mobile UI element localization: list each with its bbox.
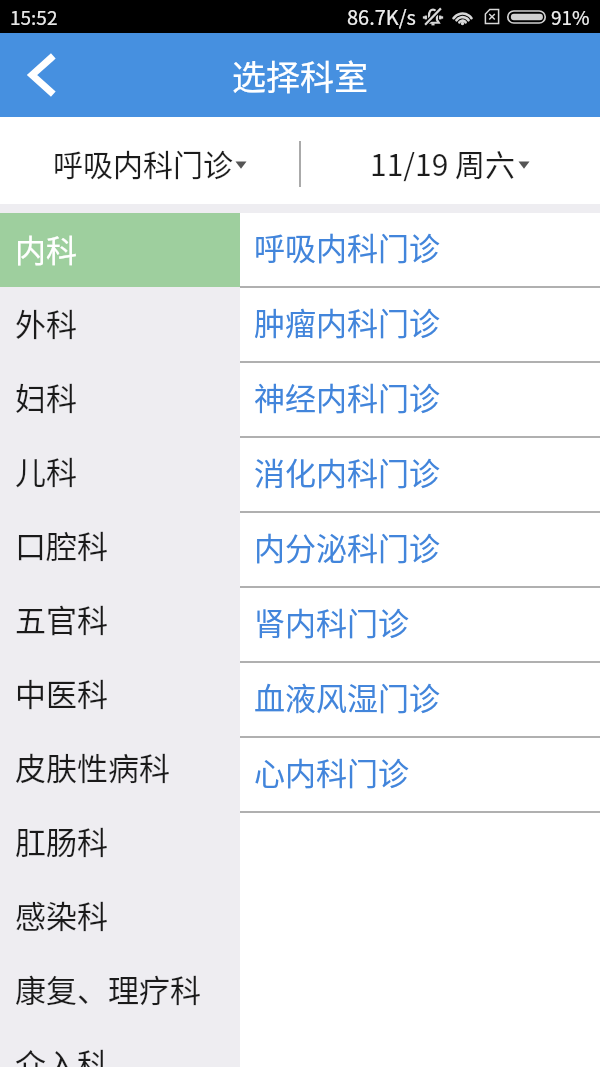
button[interactable]: 呼吸内科门诊 xyxy=(0,120,300,204)
button[interactable]: 肾内科门诊 xyxy=(240,588,600,663)
staticText: 妇科 xyxy=(15,374,77,419)
staticText: 11/19 周六 xyxy=(370,141,516,184)
button[interactable]: 五官科 xyxy=(0,583,240,657)
button[interactable]: 内分泌科门诊 xyxy=(240,513,600,588)
button[interactable]: 外科 xyxy=(0,287,240,361)
button[interactable]: 11/19 周六 xyxy=(300,120,600,204)
staticText: 介入科 xyxy=(15,1040,108,1067)
staticText: 中医科 xyxy=(15,670,108,715)
button[interactable]: 血液风湿门诊 xyxy=(240,663,600,738)
staticText: 皮肤性病科 xyxy=(15,744,170,789)
staticText: 消化内科门诊 xyxy=(254,449,440,494)
staticText: 外科 xyxy=(15,300,77,345)
staticText: 五官科 xyxy=(15,596,108,641)
button[interactable]: 中医科 xyxy=(0,657,240,731)
button[interactable]: 内科 xyxy=(0,213,240,287)
staticText: 内科 xyxy=(15,226,77,271)
button[interactable]: 呼吸内科门诊 xyxy=(240,213,600,288)
button[interactable]: 心内科门诊 xyxy=(240,738,600,813)
button[interactable]: 消化内科门诊 xyxy=(240,438,600,513)
staticText: 神经内科门诊 xyxy=(254,374,440,419)
button[interactable]: 皮肤性病科 xyxy=(0,731,240,805)
staticText: 选择科室 xyxy=(232,51,368,100)
button[interactable]: 肛肠科 xyxy=(0,805,240,879)
button[interactable]: 介入科 xyxy=(0,1027,240,1067)
button[interactable]: 妇科 xyxy=(0,361,240,435)
button[interactable]: 肿瘤内科门诊 xyxy=(240,288,600,363)
button[interactable]: Back xyxy=(0,33,83,117)
staticText: 15:52 xyxy=(10,3,58,31)
staticText: 康复、理疗科 xyxy=(15,966,201,1011)
staticText: 心内科门诊 xyxy=(254,749,409,794)
staticText: 肿瘤内科门诊 xyxy=(254,299,440,344)
staticText: 呼吸内科门诊 xyxy=(254,224,440,269)
staticText: 口腔科 xyxy=(15,522,108,567)
staticText: 感染科 xyxy=(15,892,108,937)
staticText: 肛肠科 xyxy=(15,818,108,863)
button[interactable]: 神经内科门诊 xyxy=(240,363,600,438)
staticText: 91% xyxy=(551,3,590,31)
staticText: 内分泌科门诊 xyxy=(254,524,440,569)
staticText: 肾内科门诊 xyxy=(254,599,409,644)
button[interactable]: 儿科 xyxy=(0,435,240,509)
staticText: 儿科 xyxy=(15,448,77,493)
button[interactable]: 口腔科 xyxy=(0,509,240,583)
staticText: 86.7K/s xyxy=(347,2,416,31)
staticText: 血液风湿门诊 xyxy=(254,674,440,719)
staticText: 呼吸内科门诊 xyxy=(53,141,233,184)
button[interactable]: 感染科 xyxy=(0,879,240,953)
button[interactable]: 康复、理疗科 xyxy=(0,953,240,1027)
